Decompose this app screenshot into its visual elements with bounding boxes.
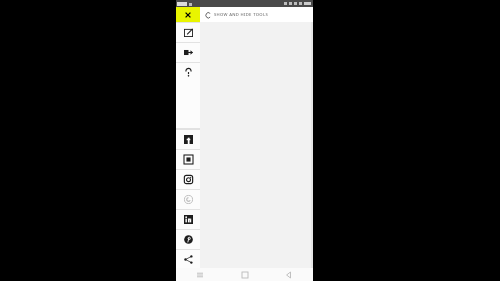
button[interactable]: Instagram: [176, 170, 200, 189]
button[interactable]: Home: [239, 269, 251, 281]
button[interactable]: Help: [176, 63, 200, 82]
button[interactable]: Close: [176, 7, 200, 22]
button[interactable]: Share: [176, 250, 200, 268]
button[interactable]: LinkedIn: [176, 210, 200, 229]
button[interactable]: Recents: [194, 269, 206, 281]
button[interactable]: Pinterest: [176, 230, 200, 249]
button[interactable]: Twitter: [176, 150, 200, 169]
staticText: SHOW AND HIDE TOOLS: [214, 12, 269, 18]
button[interactable]: WhatsApp: [176, 190, 200, 209]
button[interactable]: Log out: [176, 43, 200, 62]
button[interactable]: Facebook: [176, 130, 200, 149]
button[interactable]: Edit: [176, 23, 200, 42]
button[interactable]: Back: [283, 269, 295, 281]
